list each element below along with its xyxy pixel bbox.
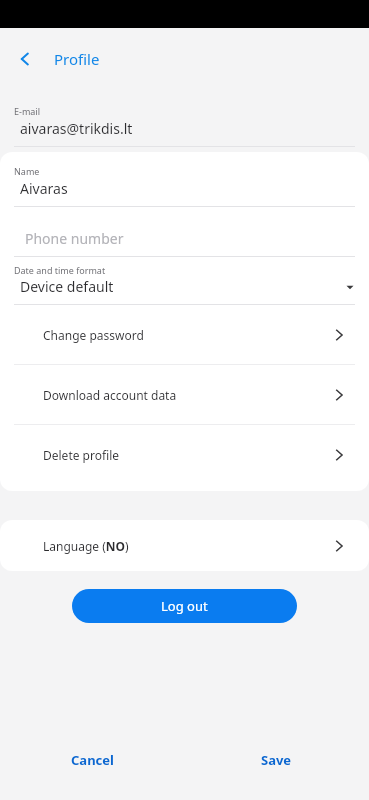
button[interactable]: Profile	[50, 43, 104, 75]
button[interactable]: Language (NO)	[0, 520, 369, 571]
staticText: Save	[261, 751, 292, 769]
button[interactable]: Log out	[72, 589, 297, 623]
staticText: E-mail	[14, 105, 41, 117]
staticText: Delete profile	[43, 447, 120, 463]
staticText: Download account data	[43, 387, 177, 403]
staticText: Cancel	[71, 751, 114, 769]
staticText: Aivaras	[20, 179, 68, 198]
staticText: Date and time format	[14, 264, 106, 276]
staticText: Device default	[20, 277, 114, 296]
staticText: Name	[14, 165, 40, 177]
button[interactable]: Phone number	[0, 207, 369, 257]
staticText: Log out	[161, 597, 208, 615]
button[interactable]: Change password	[0, 305, 369, 364]
button[interactable]: Name	[0, 152, 369, 207]
staticText: Change password	[43, 327, 144, 343]
button[interactable]: Delete profile	[0, 425, 369, 484]
button[interactable]: Cancel	[0, 728, 184, 792]
button[interactable]: Back	[8, 42, 42, 76]
staticText: Profile	[54, 49, 100, 69]
staticText: Language (NO)	[43, 538, 129, 554]
button[interactable]: Date and time format	[0, 257, 369, 305]
button[interactable]: Save	[184, 728, 369, 792]
staticText: Phone number	[25, 229, 124, 248]
staticText: aivaras@trikdis.lt	[20, 119, 133, 138]
button[interactable]: Download account data	[0, 365, 369, 424]
